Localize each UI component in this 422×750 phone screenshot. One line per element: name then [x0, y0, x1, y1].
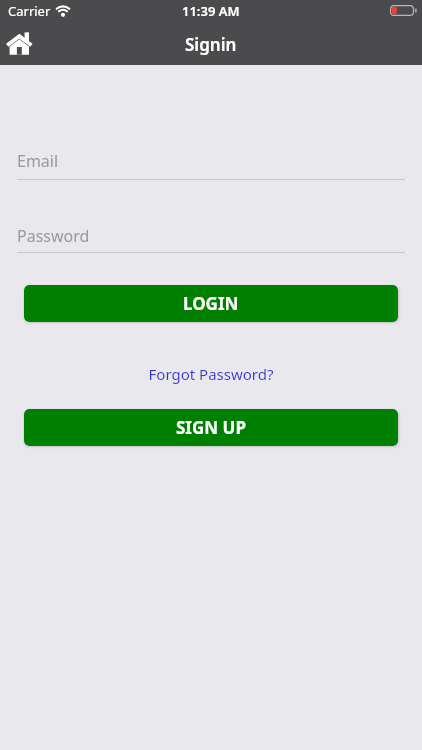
staticText: Signin: [185, 33, 237, 56]
staticText: Password: [17, 225, 90, 247]
button[interactable]: [5, 29, 33, 57]
staticText: Carrier: [8, 2, 51, 20]
button[interactable]: Password: [0, 225, 422, 253]
staticText: Email: [17, 150, 59, 172]
button[interactable]: Email: [0, 150, 422, 180]
button[interactable]: Forgot Password?: [0, 364, 422, 384]
staticText: SIGN UP: [176, 416, 246, 439]
button[interactable]: SIGN UP: [24, 409, 398, 446]
staticText: LOGIN: [183, 292, 239, 315]
staticText: 11:39 AM: [182, 2, 240, 20]
button[interactable]: LOGIN: [24, 285, 398, 322]
